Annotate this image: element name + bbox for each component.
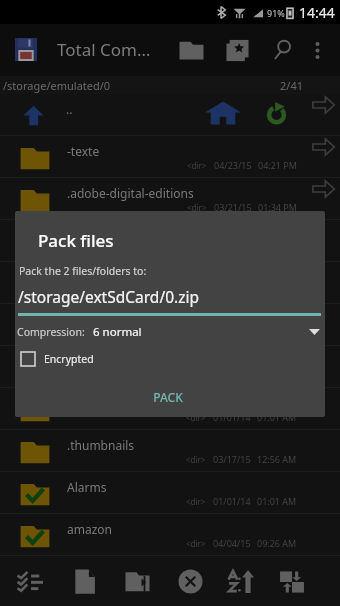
button[interactable]: Alarms (0, 472, 340, 514)
staticText: 01:01 AM (257, 411, 297, 423)
button[interactable]: Bookmarks (222, 35, 253, 65)
button[interactable]: Open -texte (307, 136, 339, 157)
button[interactable]: .android (0, 220, 340, 262)
staticText: .adobe-digital-editions (67, 185, 194, 201)
button[interactable]: Select items (7, 557, 53, 606)
staticText: <dir> (186, 454, 206, 465)
staticText: .bookmarks (67, 269, 134, 285)
button[interactable]: .face (0, 346, 340, 388)
staticText: Encrypted (44, 352, 94, 366)
staticText: .face (67, 353, 94, 369)
button[interactable]: .. (0, 94, 340, 136)
staticText: 04/04/15 (213, 537, 251, 549)
staticText: Compression: (17, 325, 85, 339)
button[interactable]: Close (167, 557, 213, 606)
staticText: 01/01/14 (213, 411, 251, 423)
staticText: <dir> (186, 412, 206, 423)
button[interactable]: Open parent folder (307, 94, 339, 115)
staticText: /storage/emulated/0 (3, 78, 111, 93)
button[interactable]: .goodreads (0, 388, 340, 430)
staticText: Total Com… (57, 38, 151, 61)
staticText: 01:01 AM (257, 495, 297, 507)
staticText: amazon (67, 521, 113, 537)
staticText: 03/21/15 (214, 201, 252, 213)
staticText: Alarms (67, 479, 107, 495)
staticText: 2/41 (280, 78, 303, 93)
button[interactable]: Open .adobe-digital-editions (307, 178, 339, 199)
button[interactable]: Search (268, 35, 298, 65)
staticText: 01:34 PM (258, 201, 297, 213)
button[interactable]: Refresh (261, 98, 291, 128)
staticText: 04:21 PM (258, 159, 297, 171)
button[interactable]: Encrypted (21, 349, 94, 368)
staticText: <dir> (186, 286, 206, 297)
staticText: 14:44 (299, 3, 335, 22)
button[interactable]: Home (201, 98, 245, 128)
staticText: 91% (267, 7, 285, 19)
button[interactable]: .bookmarks (0, 262, 340, 304)
button[interactable]: .adobe-digital-editions (0, 178, 340, 220)
button[interactable]: More options (305, 33, 330, 67)
staticText: Pack files (38, 229, 114, 252)
staticText: .thumbnails (67, 437, 135, 453)
staticText: 03/17/15 (213, 453, 251, 465)
staticText: PACK (153, 389, 183, 405)
button[interactable]: Folders (175, 35, 208, 65)
staticText: .. (66, 101, 73, 117)
button[interactable]: Compression: (15, 321, 325, 343)
staticText: <dir> (186, 538, 206, 549)
staticText: 09:26 AM (257, 537, 297, 549)
button[interactable]: Swap panels (269, 557, 315, 606)
button[interactable]: PACK (139, 383, 197, 411)
staticText: -texte (67, 143, 100, 159)
button[interactable]: -texte (0, 136, 340, 178)
staticText: .android (67, 227, 115, 243)
staticText: 04/23/15 (214, 159, 252, 171)
staticText: 6 normal (93, 324, 142, 340)
staticText: /storage/extSdCard/0.zip (18, 286, 199, 307)
staticText: .estrongs (67, 311, 120, 327)
staticText: <dir> (187, 202, 207, 213)
staticText: 01/01/14 (213, 495, 251, 507)
button[interactable]: .thumbnails (0, 430, 340, 472)
staticText: Pack the 2 files/folders to: (19, 264, 147, 278)
button[interactable]: .estrongs (0, 304, 340, 346)
staticText: 12:56 AM (257, 453, 297, 465)
staticText: <dir> (186, 496, 206, 507)
button[interactable]: New folder (114, 557, 160, 606)
button[interactable]: amazon (0, 514, 340, 556)
button[interactable]: New file (62, 557, 108, 606)
staticText: <dir> (187, 160, 207, 171)
button[interactable]: Sort (218, 557, 264, 606)
